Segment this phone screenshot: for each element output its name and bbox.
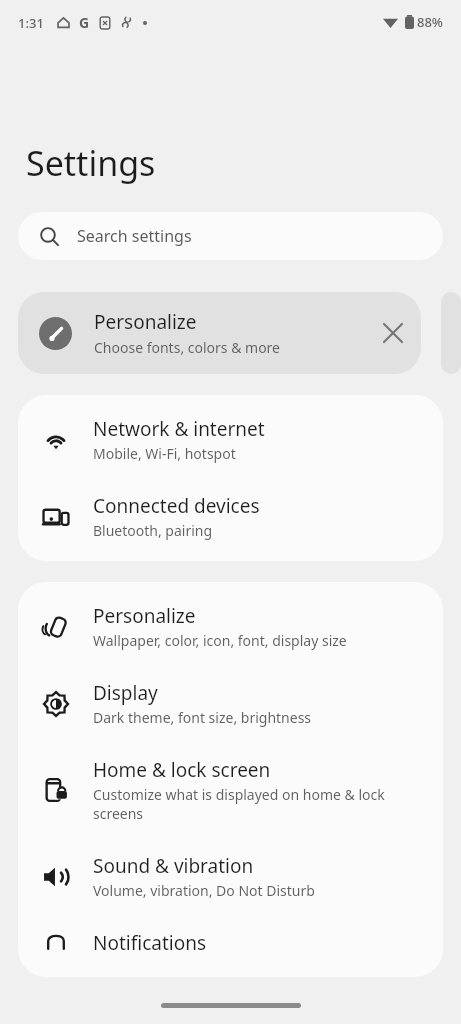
staticText: Choose fonts, colors & more	[94, 338, 281, 357]
staticText: Mobile, Wi-Fi, hotspot	[93, 444, 236, 463]
button[interactable]	[441, 292, 461, 374]
staticText: Search settings	[77, 225, 192, 247]
button[interactable]: Display	[18, 665, 443, 742]
staticText: Display	[93, 680, 158, 706]
button[interactable]: Personalize	[18, 588, 443, 665]
staticText: Network & internet	[93, 416, 265, 442]
staticText: Wallpaper, color, icon, font, display si…	[93, 631, 347, 650]
button[interactable]: Personalize	[18, 292, 421, 374]
staticText: 88%	[417, 13, 443, 31]
staticText: Personalize	[93, 603, 196, 629]
staticText: Connected devices	[93, 493, 260, 519]
button[interactable]: Connected devices	[18, 478, 443, 555]
staticText: Bluetooth, pairing	[93, 521, 213, 540]
staticText: G	[79, 13, 90, 32]
button[interactable]: Sound & vibration	[18, 838, 443, 915]
staticText: Sound & vibration	[93, 853, 254, 879]
staticText: Volume, vibration, Do Not Disturb	[93, 881, 315, 900]
staticText: Settings	[26, 140, 156, 186]
staticText: Personalize	[94, 309, 197, 335]
staticText: Notifications	[93, 930, 207, 956]
staticText: Customize what is displayed on home & lo…	[93, 785, 423, 823]
button[interactable]: Network & internet	[18, 401, 443, 478]
button[interactable]: Search settings	[18, 212, 443, 260]
button[interactable]: Notifications	[18, 915, 443, 971]
staticText: Dark theme, font size, brightness	[93, 708, 312, 727]
staticText: 1:31	[18, 14, 44, 32]
button[interactable]: Home & lock screen	[18, 742, 443, 838]
button[interactable]: Dismiss suggestion	[371, 311, 415, 355]
staticText: Home & lock screen	[93, 757, 271, 783]
